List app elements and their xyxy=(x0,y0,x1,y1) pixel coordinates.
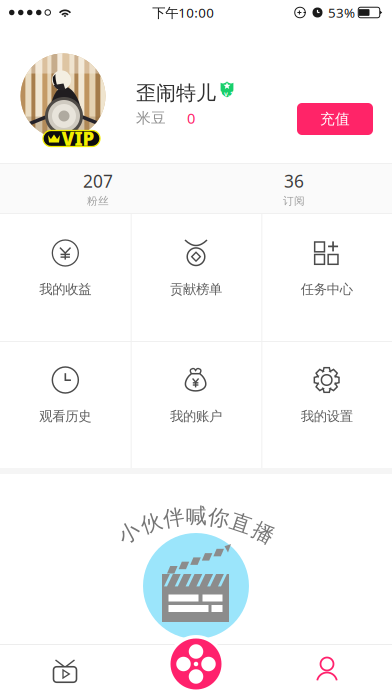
staticText: VIP xyxy=(61,126,94,151)
button[interactable]: 我的设置 xyxy=(261,341,392,468)
staticText: 喊 xyxy=(185,503,206,529)
staticText: 伙 xyxy=(141,510,162,536)
button[interactable]: 我的 xyxy=(262,644,392,696)
staticText: 207 xyxy=(83,169,113,192)
staticText: 我的收益 xyxy=(39,281,91,297)
button[interactable]: 观看历史 xyxy=(0,341,131,468)
staticText: 36 xyxy=(284,169,304,192)
staticText: 任务中心 xyxy=(301,281,353,297)
staticText: 米豆 xyxy=(136,109,166,127)
button[interactable]: 任务中心 xyxy=(261,214,392,341)
button[interactable]: 207 xyxy=(0,164,196,213)
staticText: 订阅 xyxy=(283,194,305,208)
button[interactable]: 充值 xyxy=(297,103,373,135)
staticText: 贡献榜单 xyxy=(170,281,222,297)
button[interactable]: 直播 xyxy=(0,644,130,696)
button[interactable]: 贡献榜单 xyxy=(131,214,261,341)
button[interactable]: 我的收益 xyxy=(0,214,131,341)
staticText: 歪闹特儿 xyxy=(136,81,216,105)
button[interactable]: 我的账户 xyxy=(131,341,261,468)
staticText: 小 xyxy=(118,520,139,546)
staticText: 观看历史 xyxy=(39,408,91,424)
staticText: 我的账户 xyxy=(170,408,222,424)
staticText: 0 xyxy=(187,108,195,128)
staticText: 下午10:00 xyxy=(152,4,214,21)
staticText: 我的设置 xyxy=(301,408,353,424)
button[interactable]: 开播 xyxy=(167,635,225,693)
button[interactable]: 36 xyxy=(196,164,392,213)
staticText: 你 xyxy=(208,505,229,531)
staticText: Lv.1 xyxy=(220,90,234,98)
staticText: 伴 xyxy=(163,505,184,531)
staticText: 53% xyxy=(328,4,355,21)
staticText: 粉丝 xyxy=(87,194,109,208)
staticText: 直 xyxy=(230,510,251,536)
staticText: 播 xyxy=(253,520,274,546)
staticText: 充值 xyxy=(320,110,350,128)
